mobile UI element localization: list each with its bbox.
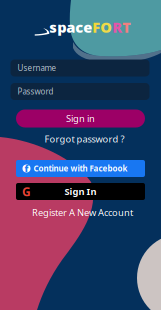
staticText: Continue with Facebook — [33, 163, 127, 174]
button[interactable]: Sign in — [16, 109, 145, 127]
staticText: Sign in — [66, 112, 95, 125]
staticText: Register A New Account — [32, 206, 133, 219]
staticText: R — [112, 17, 122, 37]
staticText: T — [122, 17, 131, 37]
button[interactable]: Forgot password ? — [12, 133, 157, 144]
staticText: O — [100, 17, 112, 37]
staticText: Username — [17, 63, 56, 73]
button[interactable]: Register A New Account — [10, 207, 155, 218]
staticText: f — [24, 162, 28, 175]
staticText: Forgot password ? — [44, 133, 124, 145]
staticText: G — [22, 183, 31, 199]
button[interactable]: Sign In — [16, 183, 145, 200]
staticText: Sign In — [64, 185, 96, 198]
staticText: Password — [17, 86, 53, 97]
button[interactable]: Continue with Facebook — [16, 160, 145, 177]
staticText: space — [49, 17, 92, 37]
staticText: F — [92, 17, 100, 37]
